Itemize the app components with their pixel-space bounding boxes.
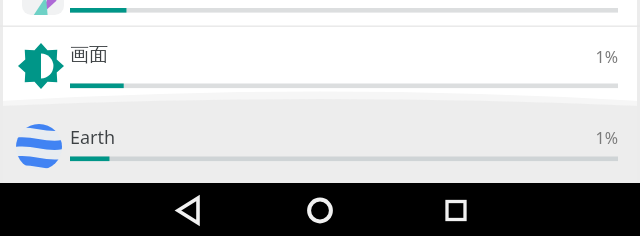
button[interactable]: Recent apps: [426, 183, 486, 236]
staticText: 1%: [0, 46, 618, 68]
staticText: 画面: [70, 43, 108, 67]
button[interactable]: Earth: [0, 104, 640, 183]
button[interactable]: 画面: [0, 26, 640, 104]
button[interactable]: Home: [290, 183, 350, 236]
button[interactable]: Back: [159, 183, 219, 236]
staticText: Earth: [70, 125, 116, 150]
other: Display: [18, 44, 64, 90]
staticText: 1%: [0, 127, 618, 149]
